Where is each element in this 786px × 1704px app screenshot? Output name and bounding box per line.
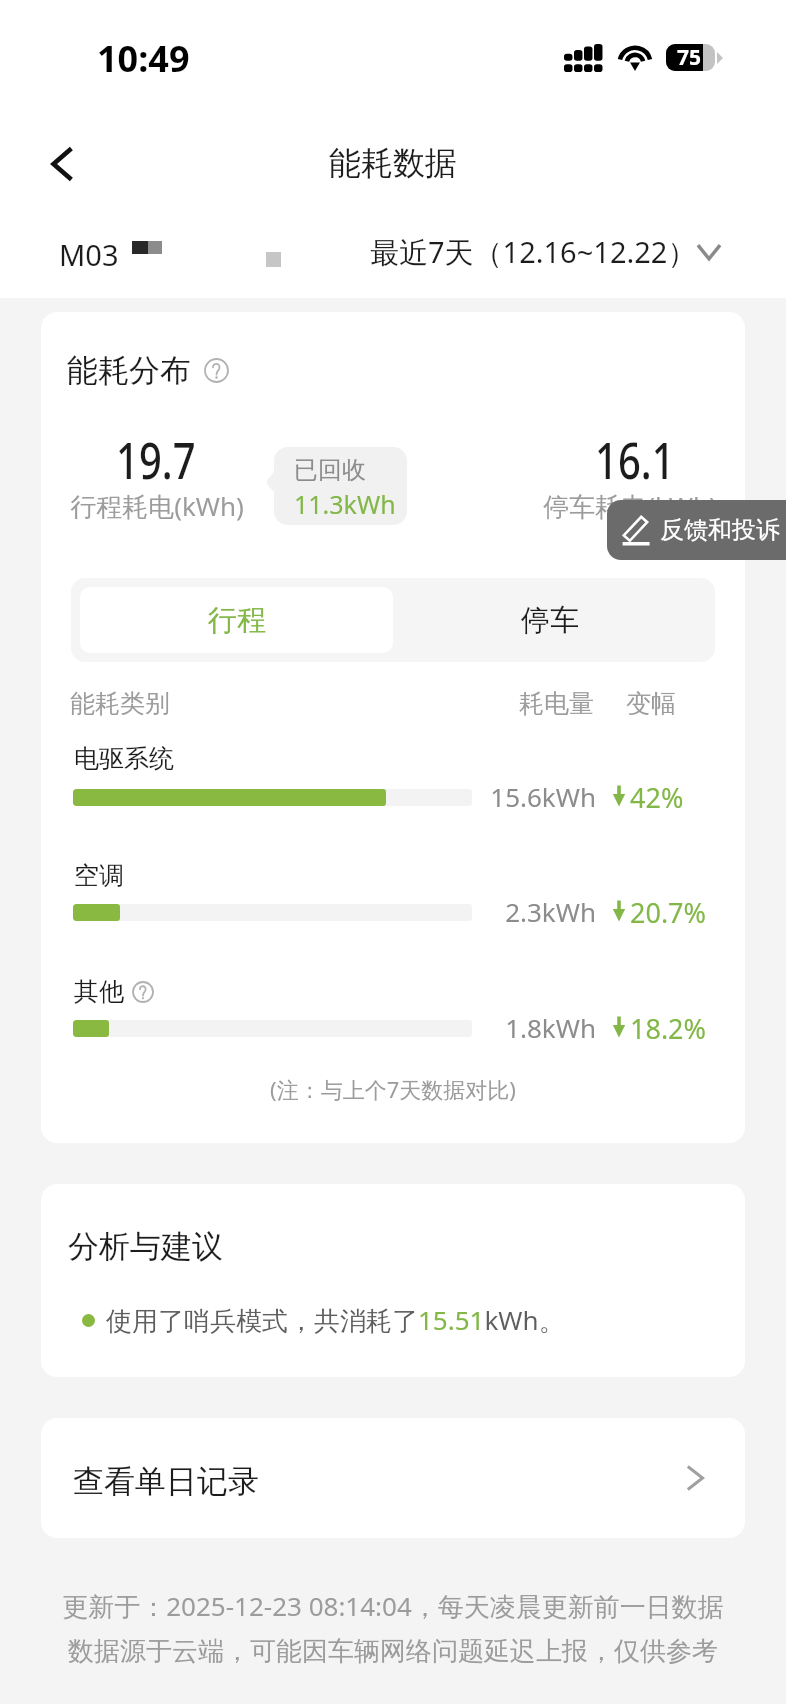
staticText: 数据源于云端，可能因车辆网络问题延迟上报，仅供参考 — [0, 1635, 786, 1668]
staticText: 查看单日记录 — [73, 1462, 259, 1501]
button[interactable]: 行程 — [80, 587, 393, 653]
staticText: 行程 — [208, 602, 266, 639]
staticText: 2.3kWh — [456, 894, 596, 929]
button[interactable]: Help — [132, 981, 154, 1003]
staticText: 最近7天（12.16~12.22） — [370, 232, 697, 272]
staticText: 16.1 — [595, 426, 675, 494]
staticText: 20.7% — [630, 894, 707, 931]
button[interactable]: 停车 — [393, 587, 706, 653]
staticText: (注：与上个7天数据对比) — [41, 1074, 745, 1104]
staticText: 变幅 — [626, 688, 676, 719]
staticText: 15.6kWh — [456, 779, 596, 814]
staticText: 75 — [677, 44, 702, 70]
staticText: 11.3kWh — [294, 487, 396, 521]
staticText: 反馈和投诉 — [660, 515, 780, 545]
button[interactable]: 反馈和投诉 — [607, 500, 786, 560]
staticText: 19.7 — [116, 426, 196, 494]
staticText: 其他 — [74, 976, 124, 1007]
staticText: 停车耗电(kWh) — [530, 488, 730, 524]
staticText: 能耗分布 — [67, 351, 191, 390]
button[interactable]: 最近7天（12.16~12.22） — [366, 222, 731, 282]
staticText: M03 — [59, 235, 119, 274]
staticText: 10:49 — [97, 34, 190, 83]
staticText: 行程耗电(kWh) — [57, 488, 257, 524]
staticText: 耗电量 — [519, 688, 594, 719]
staticText: 电驱系统 — [74, 743, 174, 774]
staticText: 空调 — [74, 860, 124, 891]
staticText: 1.8kWh — [456, 1010, 596, 1045]
staticText: 分析与建议 — [68, 1227, 223, 1266]
staticText: 42% — [630, 779, 684, 816]
staticText: 更新于：2025-12-23 08:14:04，每天凌晨更新前一日数据 — [0, 1588, 786, 1624]
button[interactable]: Help — [204, 358, 229, 383]
staticText: 18.2% — [630, 1010, 707, 1047]
button[interactable]: Back — [30, 131, 96, 197]
staticText: 能耗数据 — [329, 143, 457, 183]
staticText: 能耗类别 — [70, 688, 170, 719]
button[interactable]: 查看单日记录 — [41, 1418, 745, 1538]
staticText: 使用了哨兵模式，共消耗了15.51kWh。 — [106, 1302, 565, 1338]
staticText: 已回收 — [294, 455, 366, 485]
staticText: 停车 — [521, 602, 579, 639]
